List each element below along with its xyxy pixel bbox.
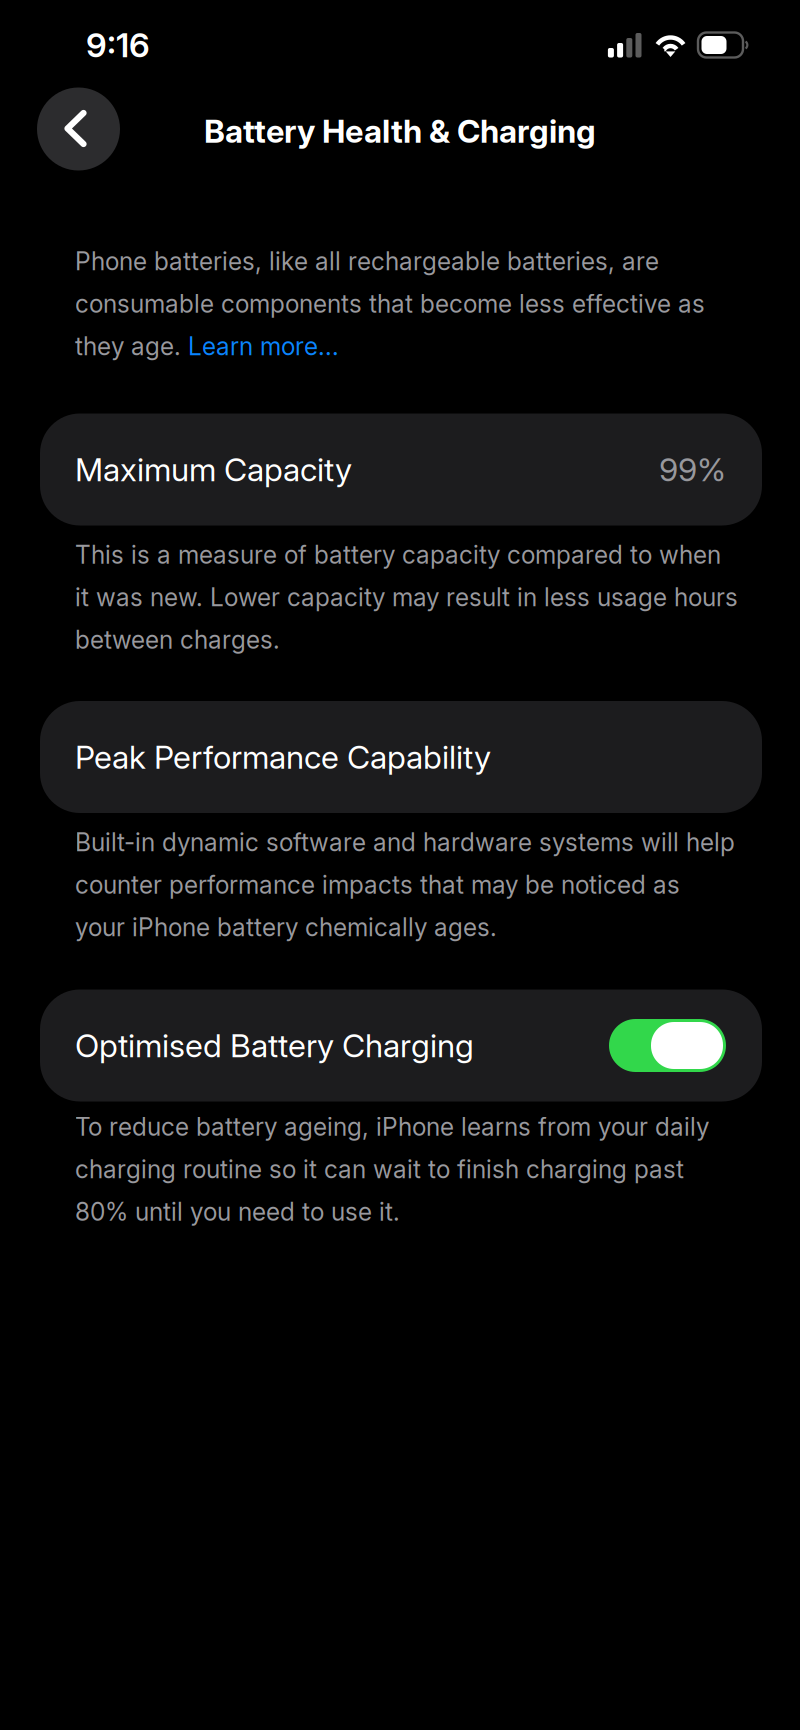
staticText: Peak Performance Capability xyxy=(75,738,491,776)
button[interactable]: Optimised Battery Charging xyxy=(40,989,762,1101)
staticText: Optimised Battery Charging xyxy=(75,1026,474,1065)
staticText: Maximum Capacity xyxy=(75,450,352,489)
staticText: 9:16 xyxy=(86,25,150,65)
staticText: counter performance impacts that may be … xyxy=(75,870,680,900)
button[interactable]: Back xyxy=(37,87,120,170)
staticText: they age. xyxy=(75,331,188,361)
staticText: between charges. xyxy=(75,625,280,655)
staticText: Phone batteries, like all rechargeable b… xyxy=(75,246,659,276)
button[interactable]: Peak Performance Capability xyxy=(40,701,762,813)
staticText: Battery Health & Charging xyxy=(204,112,596,150)
button[interactable]: Learn more... xyxy=(188,331,339,361)
staticText: 99% xyxy=(659,450,726,489)
button[interactable]: Maximum Capacity xyxy=(40,413,762,525)
staticText: To reduce battery ageing, iPhone learns … xyxy=(75,1112,709,1142)
staticText: your iPhone battery chemically ages. xyxy=(75,912,497,942)
staticText: it was new. Lower capacity may result in… xyxy=(75,582,738,612)
staticText: charging routine so it can wait to finis… xyxy=(75,1154,684,1184)
staticText: 80% until you need to use it. xyxy=(75,1197,400,1227)
staticText: Built-in dynamic software and hardware s… xyxy=(75,827,735,857)
staticText: Learn more... xyxy=(188,331,339,361)
staticText: consumable components that become less e… xyxy=(75,289,705,319)
staticText: This is a measure of battery capacity co… xyxy=(75,540,721,570)
